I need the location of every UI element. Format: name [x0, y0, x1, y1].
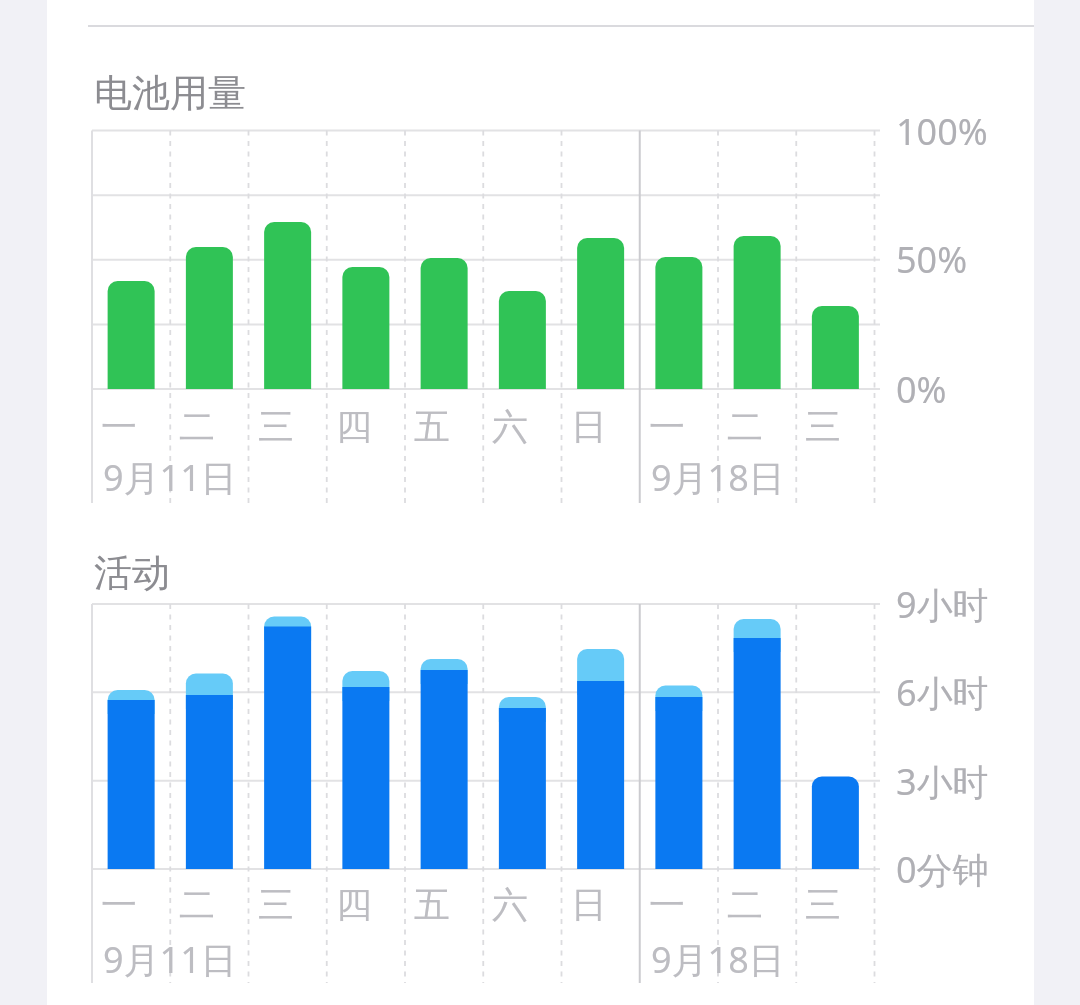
- staticText: 四: [336, 882, 372, 927]
- staticText: 电池用量: [94, 69, 246, 117]
- staticText: 一: [649, 882, 685, 927]
- staticText: 0%: [896, 365, 947, 414]
- staticText: 9月11日: [103, 935, 237, 984]
- staticText: 六: [492, 404, 528, 449]
- staticText: 一: [649, 404, 685, 449]
- staticText: 50%: [896, 235, 968, 284]
- staticText: 9月18日: [651, 935, 785, 984]
- staticText: 活动: [94, 549, 170, 597]
- staticText: 6小时: [896, 668, 989, 717]
- staticText: 二: [179, 404, 215, 449]
- staticText: 100%: [896, 107, 988, 156]
- staticText: 9月11日: [103, 453, 237, 502]
- staticText: 五: [414, 882, 450, 927]
- staticText: 三: [805, 404, 841, 449]
- staticText: 一: [101, 882, 137, 927]
- staticText: 9月18日: [651, 453, 785, 502]
- staticText: 3小时: [896, 757, 989, 806]
- staticText: 二: [179, 882, 215, 927]
- staticText: 9小时: [896, 580, 989, 629]
- staticText: 二: [727, 404, 763, 449]
- staticText: 一: [101, 404, 137, 449]
- staticText: 四: [336, 404, 372, 449]
- staticText: 日: [571, 882, 607, 927]
- staticText: 0分钟: [896, 845, 989, 894]
- staticText: 三: [258, 882, 294, 927]
- staticText: 三: [805, 882, 841, 927]
- staticText: 二: [727, 882, 763, 927]
- staticText: 日: [571, 404, 607, 449]
- staticText: 六: [492, 882, 528, 927]
- staticText: 五: [414, 404, 450, 449]
- staticText: 三: [258, 404, 294, 449]
